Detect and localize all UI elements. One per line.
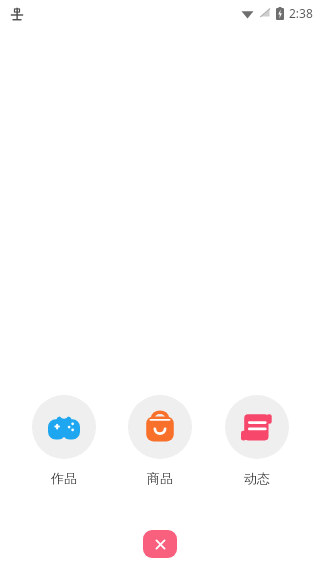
staticText: 2:38 <box>289 5 313 21</box>
staticText: 动态 <box>244 470 270 486</box>
other: 通知 <box>9 6 24 21</box>
button[interactable]: 动态 <box>214 391 300 486</box>
button[interactable]: 作品 <box>21 391 107 486</box>
other: 动态 <box>225 395 289 459</box>
button[interactable]: 关闭 <box>143 530 177 558</box>
other: 商品 <box>128 395 192 459</box>
button[interactable]: 商品 <box>117 391 203 486</box>
other: 作品 <box>32 395 96 459</box>
staticText: 商品 <box>147 470 173 486</box>
staticText: 作品 <box>51 470 77 486</box>
